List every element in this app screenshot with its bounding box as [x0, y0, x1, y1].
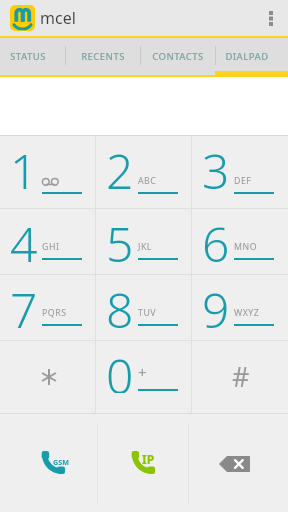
staticText: mcel [40, 7, 76, 29]
button[interactable]: 4 [0, 209, 96, 274]
button[interactable]: RECENTS [65, 38, 140, 77]
button[interactable] [0, 341, 96, 413]
button[interactable]: Backspace [188, 414, 288, 512]
staticText: DIALPAD [225, 50, 269, 63]
button[interactable]: 6 [192, 209, 288, 274]
staticText: # [232, 358, 250, 395]
staticText: IP [142, 451, 155, 467]
staticText: 6 [202, 211, 230, 262]
button[interactable]: 8 [96, 275, 192, 340]
staticText: + [138, 362, 147, 382]
staticText: CONTACTS [152, 50, 204, 63]
staticText: TUV [138, 307, 157, 319]
staticText: 7 [10, 277, 38, 328]
staticText: 3 [202, 138, 230, 196]
staticText: PQRS [42, 307, 67, 319]
staticText: ABC [138, 175, 157, 187]
staticText: GHI [42, 241, 60, 253]
staticText: STATUS [10, 50, 46, 63]
staticText: JKL [138, 241, 152, 253]
button[interactable]: GSM call [0, 414, 97, 512]
button[interactable]: mcel logo [10, 5, 35, 31]
button[interactable]: CONTACTS [140, 38, 215, 77]
staticText: 4 [10, 211, 38, 262]
button[interactable]: 5 [96, 209, 192, 274]
staticText: 5 [106, 211, 134, 262]
button[interactable]: STATUS [0, 38, 65, 77]
staticText: WXYZ [234, 307, 260, 319]
button[interactable]: IP call [97, 414, 188, 512]
button[interactable]: DIALPAD [215, 38, 278, 77]
button[interactable]: 0 [96, 341, 192, 413]
button[interactable]: # [192, 341, 288, 413]
staticText: 8 [106, 277, 134, 328]
button[interactable]: 3 [192, 136, 288, 208]
staticText: GSM [53, 457, 69, 467]
button[interactable]: 9 [192, 275, 288, 340]
staticText: 2 [106, 138, 134, 196]
staticText: 9 [202, 277, 230, 328]
staticText: 1 [10, 138, 38, 196]
button[interactable]: 1 [0, 136, 96, 208]
button[interactable]: More options [254, 0, 288, 36]
staticText: RECENTS [81, 50, 125, 63]
button[interactable]: 2 [96, 136, 192, 208]
staticText: 0 [106, 343, 134, 393]
staticText: MNO [234, 241, 258, 253]
button[interactable]: 7 [0, 275, 96, 340]
staticText: DEF [234, 175, 252, 187]
